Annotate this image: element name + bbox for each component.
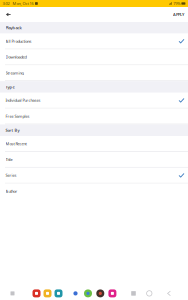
button[interactable]: Downloaded xyxy=(0,49,188,65)
button[interactable]: Recent apps xyxy=(125,287,141,300)
button[interactable]: Free Samples xyxy=(0,109,188,124)
button[interactable]: App xyxy=(31,287,42,300)
button[interactable]: App xyxy=(94,287,106,300)
button[interactable]: App xyxy=(107,287,118,300)
staticText: Most Recent xyxy=(5,141,26,146)
staticText: Downloaded xyxy=(5,54,26,60)
button[interactable]: App xyxy=(42,287,53,300)
button[interactable]: Individual Purchases xyxy=(0,93,188,109)
staticText: Title xyxy=(5,157,12,162)
button[interactable]: Title xyxy=(0,152,188,168)
button[interactable]: App xyxy=(53,287,64,300)
staticText: Free Samples xyxy=(5,113,29,119)
staticText: 3:02 Mon, Oct 16 xyxy=(3,1,34,6)
button[interactable]: Most Recent xyxy=(0,136,188,152)
staticText: Type xyxy=(5,84,14,90)
button[interactable]: Home xyxy=(141,287,157,300)
staticText: APPLY xyxy=(173,12,184,17)
staticText: Author xyxy=(5,188,17,194)
staticText: Sort By xyxy=(5,128,19,133)
button[interactable]: Back xyxy=(161,287,177,300)
button[interactable]: Back xyxy=(0,9,16,20)
staticText: Streaming xyxy=(5,70,23,75)
staticText: 79% xyxy=(173,1,180,6)
button[interactable]: All Productions xyxy=(0,34,188,49)
button[interactable]: APPLY xyxy=(169,8,188,21)
staticText: Playback xyxy=(5,25,21,30)
button[interactable]: Keyboard xyxy=(6,287,18,300)
staticText: All Productions xyxy=(5,38,31,44)
button[interactable]: App xyxy=(82,287,94,300)
button[interactable]: App xyxy=(70,287,81,300)
button[interactable]: Author xyxy=(0,184,188,199)
staticText: Individual Purchases xyxy=(5,98,40,103)
button[interactable]: Series xyxy=(0,168,188,184)
staticText: Series xyxy=(5,173,16,178)
button[interactable]: Streaming xyxy=(0,65,188,81)
